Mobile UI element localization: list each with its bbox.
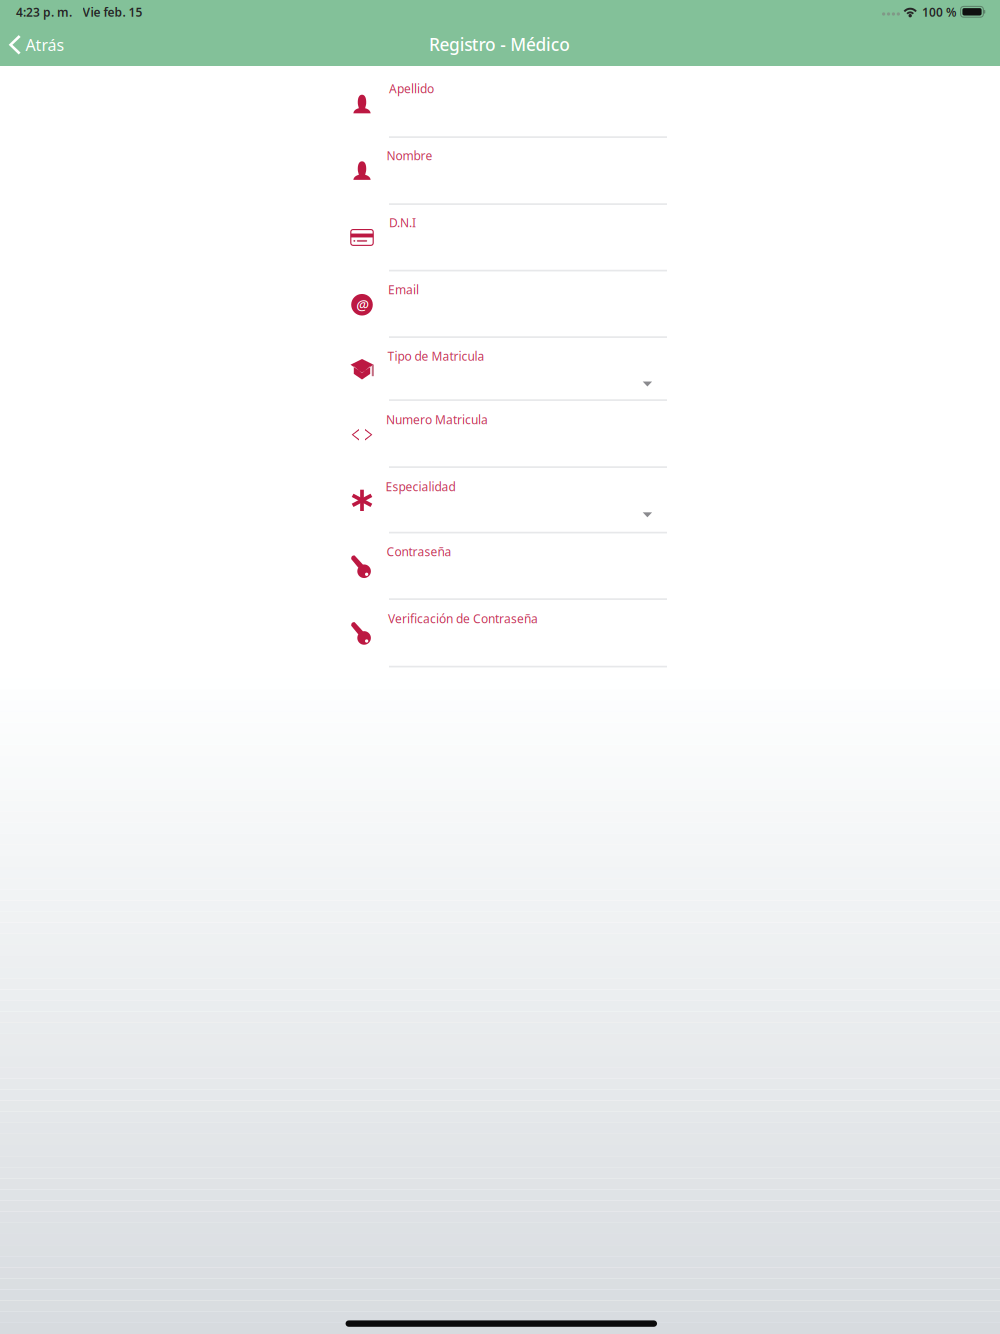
staticText: Tipo de Matricula — [387, 348, 484, 364]
staticText: Contraseña — [386, 544, 451, 560]
button[interactable]: Verificación de Contraseña — [0, 598, 1000, 665]
staticText: Atrás — [26, 34, 65, 55]
staticText: Registro - Médico — [429, 33, 570, 56]
staticText: Apellido — [389, 81, 434, 97]
button[interactable]: Numero Matricula — [0, 399, 1000, 466]
button[interactable]: Especialidad — [0, 466, 1000, 531]
button[interactable]: D.N.I — [0, 203, 1000, 269]
staticText: Numero Matricula — [386, 412, 488, 428]
staticText: Nombre — [386, 148, 432, 164]
button[interactable]: Atrás — [1, 25, 79, 65]
button[interactable]: Tipo de Matricula — [0, 336, 1000, 399]
staticText: D.N.I — [389, 215, 416, 231]
staticText: 4:23 p. m. — [16, 4, 72, 20]
button[interactable]: Contraseña — [0, 531, 1000, 598]
button[interactable]: Email — [0, 269, 1000, 336]
button[interactable]: Nombre — [0, 136, 1000, 203]
staticText: Email — [388, 282, 419, 298]
button[interactable]: Apellido — [0, 66, 1000, 136]
staticText: Verificación de Contraseña — [388, 611, 538, 627]
staticText: @ — [356, 295, 368, 314]
staticText: Especialidad — [385, 479, 455, 495]
staticText: 100 % — [922, 4, 957, 20]
staticText: Vie feb. 15 — [82, 4, 142, 20]
